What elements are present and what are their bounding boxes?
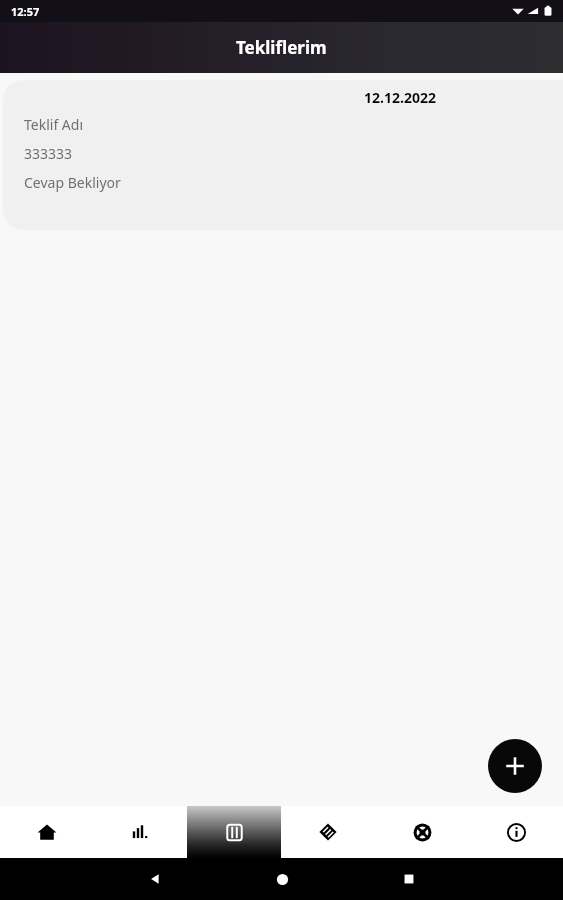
staticText: Tekliflerim: [236, 36, 327, 59]
button[interactable]: 12.12.2022: [3, 80, 563, 230]
button[interactable]: Info: [469, 806, 563, 858]
staticText: 12.12.2022: [364, 88, 436, 107]
button[interactable]: Deals: [281, 806, 375, 858]
button[interactable]: Home: [0, 806, 93, 858]
staticText: 333333: [24, 144, 73, 163]
button[interactable]: My offers: [187, 806, 281, 858]
staticText: 12:57: [11, 4, 40, 19]
button[interactable]: Statistics: [93, 806, 187, 858]
button[interactable]: Support: [375, 806, 469, 858]
staticText: Cevap Bekliyor: [24, 173, 121, 192]
staticText: Teklif Adı: [24, 115, 84, 134]
button[interactable]: Add offer: [488, 739, 542, 793]
